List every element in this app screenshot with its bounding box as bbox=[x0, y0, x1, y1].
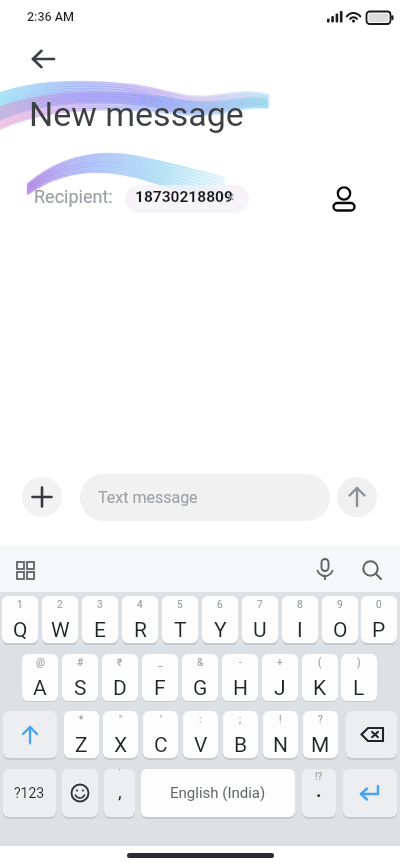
staticText: X bbox=[114, 733, 128, 758]
button[interactable]: & bbox=[182, 654, 218, 701]
staticText: 2:36 AM bbox=[27, 9, 75, 24]
button[interactable] bbox=[337, 477, 377, 517]
button[interactable]: ) bbox=[341, 654, 377, 701]
staticText: D bbox=[113, 676, 127, 701]
staticText: O bbox=[333, 618, 348, 643]
button[interactable] bbox=[3, 711, 57, 758]
button[interactable] bbox=[312, 556, 338, 584]
staticText: 0 bbox=[376, 599, 382, 611]
staticText: W bbox=[51, 618, 70, 643]
staticText: !? bbox=[315, 771, 323, 783]
button[interactable]: 2 bbox=[42, 596, 78, 643]
staticText: ( bbox=[318, 657, 322, 669]
staticText: N bbox=[273, 733, 288, 758]
staticText: & bbox=[197, 657, 204, 669]
staticText: C bbox=[154, 733, 168, 758]
button[interactable] bbox=[358, 556, 386, 584]
button[interactable]: ? bbox=[303, 711, 338, 758]
staticText: 1 bbox=[17, 599, 23, 611]
button[interactable]: ₹ bbox=[102, 654, 138, 701]
staticText: H bbox=[233, 676, 248, 701]
button[interactable]: 7 bbox=[242, 596, 278, 643]
button[interactable]: 6 bbox=[202, 596, 238, 643]
staticText: + bbox=[277, 657, 283, 669]
staticText: Z bbox=[75, 733, 88, 758]
button[interactable]: @ bbox=[22, 654, 58, 701]
button[interactable]: Text message bbox=[80, 474, 330, 521]
staticText: ? bbox=[318, 714, 323, 726]
button[interactable]: # bbox=[62, 654, 98, 701]
staticText: . bbox=[316, 779, 322, 801]
staticText: F bbox=[154, 676, 166, 701]
staticText: T bbox=[174, 618, 187, 643]
staticText: @ bbox=[36, 657, 45, 669]
button[interactable]: ; bbox=[223, 711, 258, 758]
staticText: English (India) bbox=[170, 784, 266, 802]
button[interactable]: : bbox=[183, 711, 218, 758]
button[interactable]: ! bbox=[263, 711, 298, 758]
staticText: G bbox=[193, 676, 208, 701]
staticText: New message bbox=[29, 94, 244, 134]
button[interactable]: ' bbox=[143, 711, 178, 758]
staticText: , bbox=[118, 780, 122, 802]
staticText: 5 bbox=[177, 599, 183, 611]
staticText: ˙ bbox=[118, 769, 121, 780]
button[interactable]: 0 bbox=[361, 596, 397, 643]
button[interactable]: _ bbox=[142, 654, 178, 701]
staticText: Q bbox=[13, 618, 28, 643]
button[interactable] bbox=[125, 185, 249, 213]
staticText: A bbox=[33, 676, 47, 701]
button[interactable]: + bbox=[262, 654, 298, 701]
staticText: Recipient: bbox=[34, 186, 113, 207]
staticText: 6 bbox=[217, 599, 223, 611]
staticText: 3 bbox=[97, 599, 103, 611]
button[interactable] bbox=[346, 711, 397, 758]
staticText: R bbox=[134, 618, 147, 643]
button[interactable]: !? bbox=[302, 769, 336, 817]
staticText: M bbox=[311, 733, 330, 758]
button[interactable]: 3 bbox=[82, 596, 118, 643]
button[interactable]: ˙ bbox=[104, 769, 135, 817]
button[interactable] bbox=[10, 558, 44, 584]
staticText: E bbox=[94, 618, 106, 643]
staticText: P bbox=[372, 618, 386, 643]
staticText: * bbox=[79, 714, 84, 726]
button[interactable] bbox=[62, 769, 98, 817]
staticText: × bbox=[227, 189, 235, 205]
staticText: I bbox=[297, 618, 303, 643]
staticText: V bbox=[194, 733, 208, 758]
staticText: B bbox=[234, 733, 248, 758]
staticText: L bbox=[353, 676, 365, 701]
button[interactable] bbox=[22, 477, 62, 517]
button[interactable]: ?123 bbox=[3, 769, 56, 817]
staticText: - bbox=[239, 657, 242, 669]
button[interactable]: ( bbox=[302, 654, 338, 701]
staticText: 7 bbox=[257, 599, 263, 611]
staticText: 2 bbox=[57, 599, 63, 611]
button[interactable]: " bbox=[103, 711, 138, 758]
staticText: ₹ bbox=[117, 657, 123, 669]
staticText: 4 bbox=[137, 599, 143, 611]
button[interactable]: - bbox=[222, 654, 258, 701]
button[interactable]: 8 bbox=[282, 596, 318, 643]
button[interactable]: 1 bbox=[2, 596, 38, 643]
button[interactable] bbox=[24, 44, 60, 74]
staticText: 18730218809 bbox=[135, 188, 233, 206]
staticText: J bbox=[274, 676, 286, 701]
button[interactable]: 4 bbox=[122, 596, 158, 643]
staticText: U bbox=[253, 618, 267, 643]
staticText: 8 bbox=[297, 599, 303, 611]
staticText: Text message bbox=[98, 488, 198, 507]
button[interactable]: 9 bbox=[322, 596, 358, 643]
button[interactable]: English (India) bbox=[141, 769, 295, 817]
staticText: S bbox=[74, 676, 87, 701]
staticText: Y bbox=[214, 618, 227, 643]
staticText: 9 bbox=[337, 599, 343, 611]
button[interactable] bbox=[328, 182, 360, 214]
button[interactable]: * bbox=[64, 711, 99, 758]
button[interactable]: 5 bbox=[162, 596, 198, 643]
staticText: # bbox=[77, 657, 84, 669]
button[interactable] bbox=[343, 769, 397, 817]
staticText: ?123 bbox=[14, 785, 45, 801]
staticText: ! bbox=[279, 714, 282, 726]
